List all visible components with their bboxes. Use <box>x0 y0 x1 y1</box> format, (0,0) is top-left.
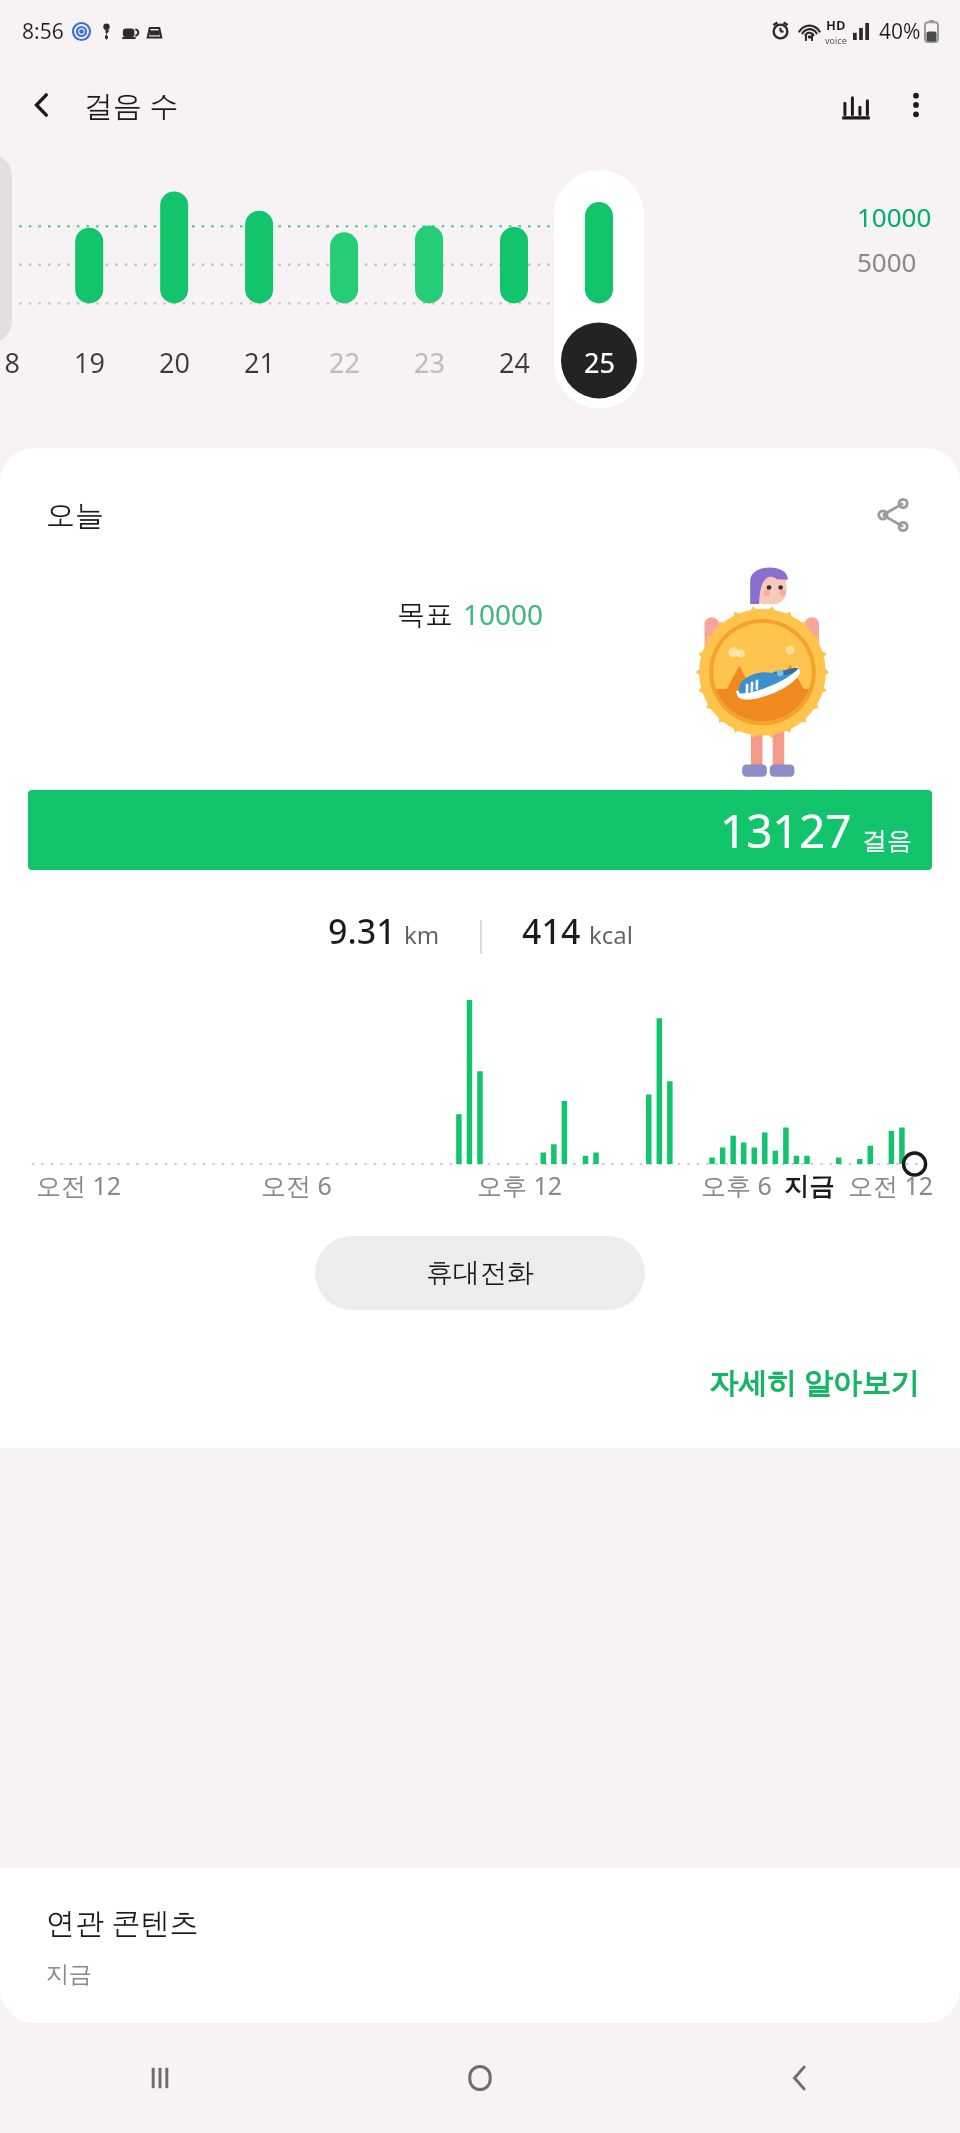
button[interactable]: 20 <box>132 334 217 390</box>
staticText: 9.31 <box>328 908 396 954</box>
button[interactable]: 24 <box>472 334 557 390</box>
button[interactable]: 휴대전화 <box>315 1236 645 1310</box>
staticText: 지금 <box>784 1171 834 1202</box>
staticText: 걸음 수 <box>84 85 179 125</box>
button[interactable]: More options <box>886 75 946 135</box>
staticText: 자세히 알아보기 <box>709 1362 920 1402</box>
staticText: voice <box>825 34 847 46</box>
staticText: 목표 <box>397 597 453 632</box>
button[interactable]: Share <box>864 486 922 544</box>
staticText: 오늘 <box>46 497 104 534</box>
button[interactable]: 25 <box>557 334 642 390</box>
button[interactable]: 22 <box>302 334 387 390</box>
staticText: 오전 6 <box>261 1168 332 1202</box>
staticText: 19 <box>74 344 105 381</box>
button[interactable]: 자세히 알아보기 <box>703 1356 926 1408</box>
staticText: 21 <box>244 344 275 381</box>
button[interactable]: Back <box>14 77 70 133</box>
staticText: 걸음 <box>862 825 912 856</box>
button[interactable]: 18 <box>0 334 47 390</box>
staticText: 25 <box>584 344 615 381</box>
button[interactable]: 13127 <box>28 790 932 870</box>
staticText: kcal <box>589 918 633 951</box>
button[interactable]: 21 <box>217 334 302 390</box>
button[interactable]: Back <box>640 2023 960 2133</box>
button[interactable]: 연관 콘텐츠 <box>0 1868 960 2023</box>
staticText: 13127 <box>720 799 852 862</box>
button[interactable]: 23 <box>387 334 472 390</box>
staticText: 8:56 <box>22 17 64 46</box>
staticText: HD <box>826 16 846 34</box>
staticText: 20 <box>159 344 190 381</box>
staticText: 24 <box>499 344 530 381</box>
staticText: 22 <box>329 344 360 381</box>
button[interactable]: Recent apps <box>0 2023 320 2133</box>
staticText: 10000 <box>463 595 544 633</box>
staticText: 오후 6 <box>701 1168 772 1202</box>
staticText: 23 <box>414 344 445 381</box>
button[interactable]: 19 <box>47 334 132 390</box>
staticText: 지금 <box>46 1960 92 1989</box>
staticText: 휴대전화 <box>426 1256 534 1290</box>
staticText: 오전 12 <box>848 1168 934 1202</box>
button[interactable]: History chart <box>826 75 886 135</box>
staticText: km <box>404 918 440 951</box>
staticText: 414 <box>522 908 581 954</box>
staticText: 오전 12 <box>36 1168 122 1202</box>
staticText: 40% <box>879 17 921 46</box>
staticText: 10000 <box>857 199 932 234</box>
staticText: 연관 콘텐츠 <box>46 1902 199 1942</box>
button[interactable]: Home <box>320 2023 640 2133</box>
staticText: 오후 12 <box>477 1168 563 1202</box>
staticText: 5000 <box>857 244 917 279</box>
staticText: 18 <box>0 344 20 381</box>
